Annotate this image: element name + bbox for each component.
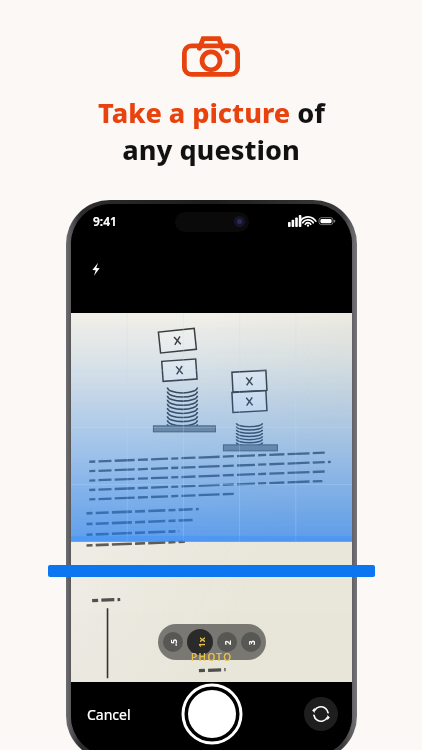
staticText: 9:41 bbox=[93, 213, 117, 229]
other: Camera bbox=[182, 34, 240, 80]
button[interactable]: 1x bbox=[187, 629, 213, 655]
staticText: 1x bbox=[194, 636, 206, 647]
button[interactable]: Cancel bbox=[83, 701, 135, 728]
button[interactable]: 2 bbox=[217, 632, 237, 652]
staticText: .5 bbox=[168, 639, 179, 646]
staticText: Cancel bbox=[87, 705, 131, 724]
staticText: 3 bbox=[246, 640, 257, 645]
button[interactable]: 3 bbox=[241, 632, 261, 652]
staticText: Take a picture of bbox=[98, 94, 325, 131]
button[interactable]: Shutter bbox=[183, 685, 241, 743]
button[interactable]: PHOTO bbox=[191, 650, 233, 664]
staticText: any question bbox=[122, 131, 300, 168]
staticText: 2 bbox=[222, 640, 233, 645]
button[interactable]: Flash bbox=[83, 256, 109, 282]
button[interactable]: .5 bbox=[163, 632, 183, 652]
button[interactable]: Flip camera bbox=[304, 697, 338, 731]
